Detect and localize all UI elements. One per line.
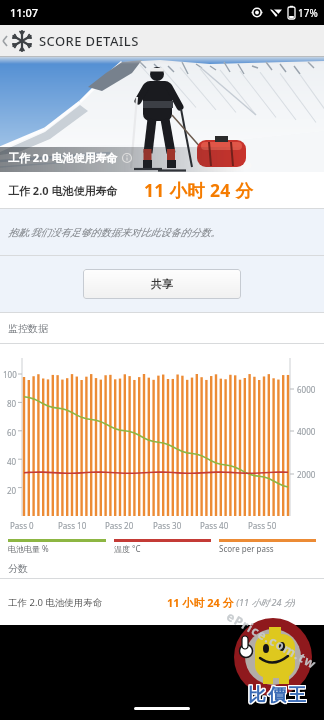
staticText: Pass 10 (58, 520, 87, 531)
button[interactable]: 共享 (83, 269, 241, 299)
button[interactable]: 比價王 (233, 617, 323, 709)
staticText: Pass 50 (248, 520, 277, 531)
button[interactable] (134, 707, 190, 710)
button[interactable]: 工作 2.0 电池使用寿命 (0, 57, 324, 172)
staticText: 比價王 (247, 684, 307, 707)
staticText: 监控数据 (8, 322, 48, 335)
staticText: 分数 (8, 562, 28, 575)
button[interactable]: 工作 2.0 电池使用寿命 (0, 172, 324, 208)
staticText: Score per pass (219, 543, 274, 554)
staticText: 共享 (151, 277, 173, 291)
staticText: 比價王 (246, 683, 306, 706)
staticText: 6000 (297, 384, 316, 395)
staticText: 11 小时 24 分 (167, 595, 234, 610)
staticText: (11 小时 24 分) (234, 596, 296, 608)
staticText: 温度 °C (114, 543, 141, 554)
staticText: 比價王 (246, 685, 306, 708)
staticText: 抱歉,我们没有足够的数据来对比此设备的分数。 (8, 225, 221, 239)
staticText: 工作 2.0 电池使用寿命 (8, 150, 118, 165)
staticText: 40 (7, 456, 17, 467)
staticText: 80 (7, 398, 17, 409)
staticText: 11:07 (10, 5, 39, 20)
staticText: 100 (3, 369, 17, 380)
staticText: 60 (7, 427, 17, 438)
staticText: 比價王 (248, 685, 308, 708)
staticText: 比價王 (246, 684, 306, 707)
staticText: 工作 2.0 电池使用寿命 (8, 596, 103, 609)
staticText: 17% (298, 6, 318, 20)
staticText: SCORE DETAILS (39, 32, 139, 50)
staticText: 电池电量 % (8, 543, 49, 554)
staticText: Pass 40 (200, 520, 229, 531)
staticText: 比價王 (248, 683, 308, 706)
staticText: ePrice.com.tw (224, 608, 320, 673)
staticText: Pass 30 (153, 520, 182, 531)
staticText: Pass 20 (105, 520, 134, 531)
staticText: 20 (7, 485, 17, 496)
staticText: 11 小时 24 分 (144, 178, 254, 202)
staticText: 工作 2.0 电池使用寿命 (8, 183, 118, 198)
staticText: 2000 (297, 469, 316, 480)
button[interactable]: SCORE DETAILS (0, 25, 324, 57)
staticText: 比價王 (248, 684, 308, 707)
button[interactable]: 工作 2.0 电池使用寿命 (0, 579, 324, 625)
staticText: 比價王 (247, 683, 307, 706)
staticText: 比價王 (247, 685, 307, 708)
staticText: Pass 0 (10, 520, 34, 531)
staticText: 4000 (297, 426, 316, 437)
